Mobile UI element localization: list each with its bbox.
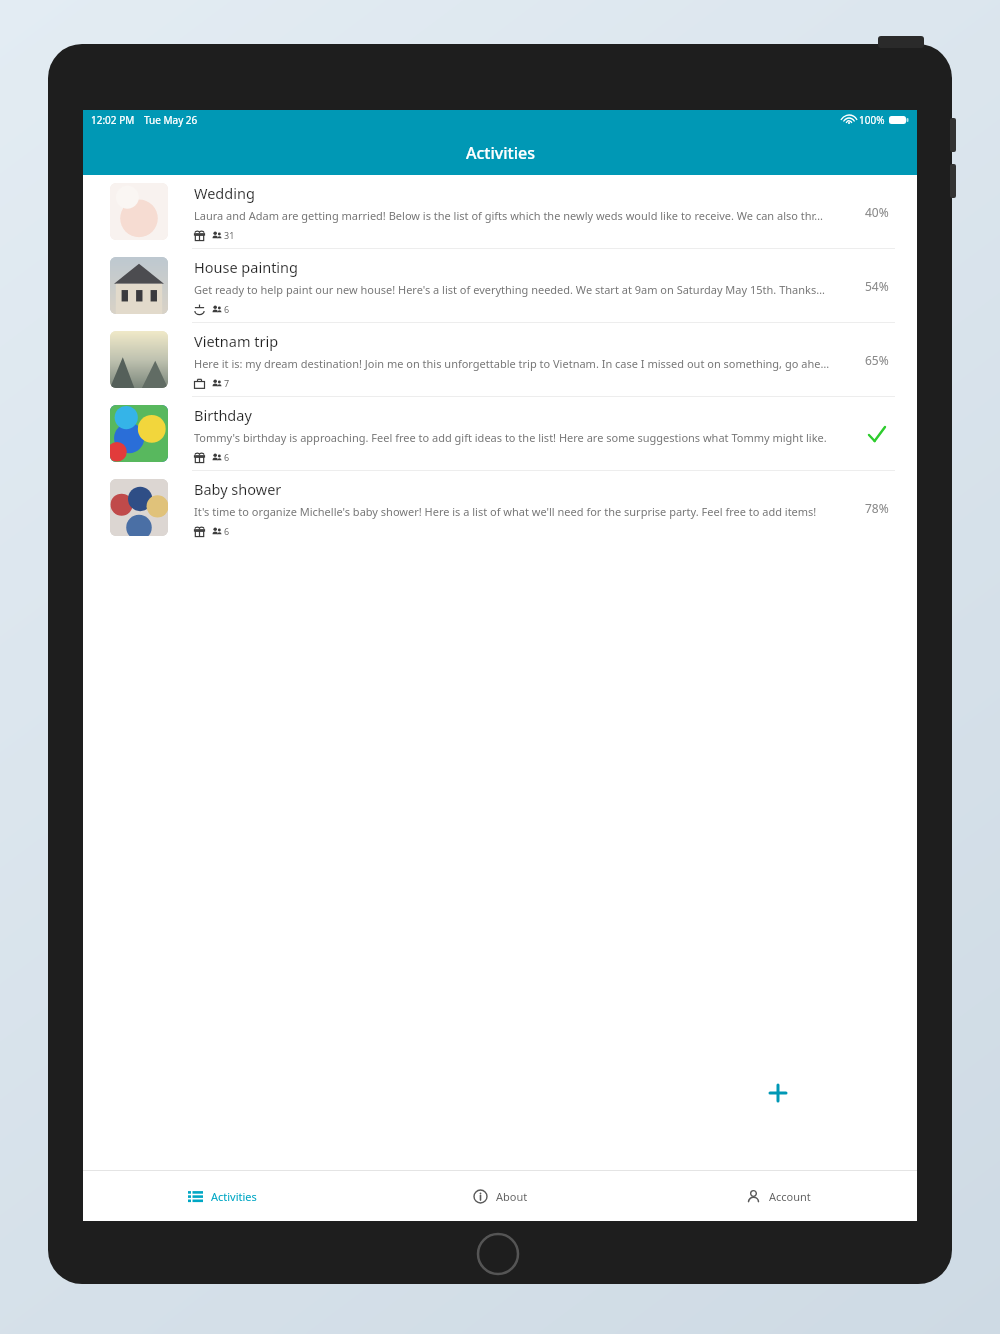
- staticText: 65%: [865, 352, 889, 368]
- staticText: Account: [769, 1189, 811, 1204]
- staticText: Laura and Adam are getting married! Belo…: [194, 208, 824, 223]
- staticText: Tommy's birthday is approaching. Feel fr…: [194, 430, 827, 445]
- staticText: Wedding: [194, 183, 255, 203]
- staticText: Get ready to help paint our new house! H…: [194, 282, 825, 297]
- button[interactable]: About: [361, 1171, 639, 1221]
- button[interactable]: Birthday: [83, 397, 917, 470]
- staticText: It's time to organize Michelle's baby sh…: [194, 504, 817, 519]
- button[interactable]: Add activity: [753, 1068, 803, 1118]
- staticText: Baby shower: [194, 479, 282, 499]
- staticText: 6: [224, 451, 230, 463]
- button[interactable]: Baby shower: [83, 471, 917, 544]
- staticText: 54%: [865, 278, 889, 294]
- staticText: 40%: [865, 204, 889, 220]
- button[interactable]: Activities: [83, 1171, 361, 1221]
- staticText: Activities: [211, 1189, 257, 1204]
- staticText: Vietnam trip: [194, 331, 279, 351]
- button[interactable]: Account: [639, 1171, 917, 1221]
- button[interactable]: House painting: [83, 249, 917, 322]
- staticText: 6: [224, 303, 230, 315]
- staticText: About: [496, 1189, 528, 1204]
- button[interactable]: Wedding: [83, 175, 917, 248]
- staticText: 31: [224, 229, 235, 241]
- staticText: 7: [224, 377, 230, 389]
- staticText: House painting: [194, 257, 298, 277]
- staticText: 78%: [865, 500, 889, 516]
- staticText: 12:02 PM: [91, 113, 135, 127]
- button[interactable]: Vietnam trip: [83, 323, 917, 396]
- staticText: Here it is: my dream destination! Join m…: [194, 356, 830, 371]
- staticText: 6: [224, 525, 230, 537]
- staticText: 100%: [859, 113, 885, 127]
- staticText: Tue May 26: [144, 113, 198, 127]
- staticText: Birthday: [194, 405, 252, 425]
- staticText: Activities: [466, 142, 535, 164]
